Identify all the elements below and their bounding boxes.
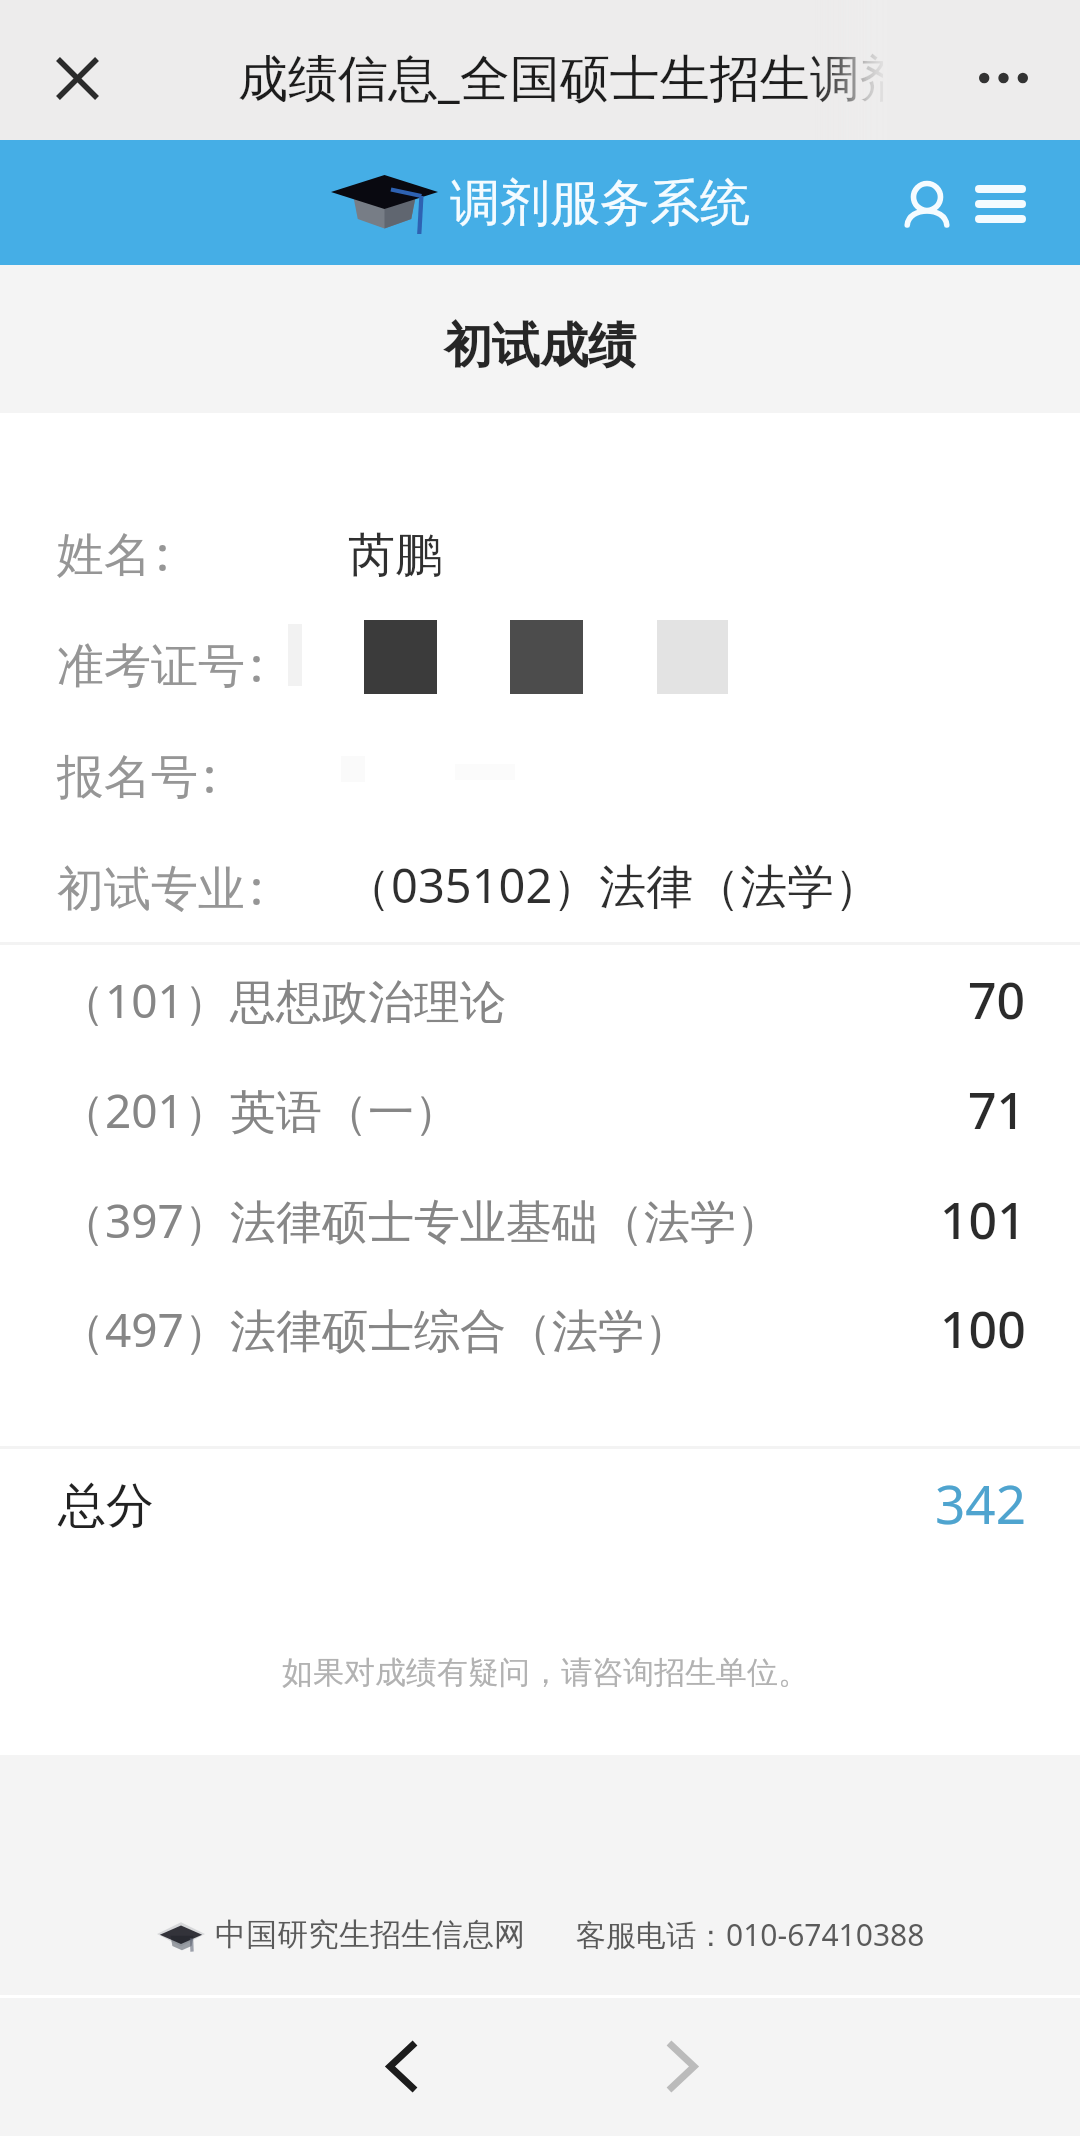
button[interactable]: Back: [348, 2012, 456, 2120]
button[interactable]: Close: [37, 38, 117, 118]
staticText: 中国研究生招生信息网: [215, 1915, 525, 1954]
staticText: （497）法律硕士综合（法学）: [59, 1298, 690, 1361]
staticText: 100: [940, 1295, 1026, 1363]
staticText: 初试专业: [57, 860, 245, 919]
staticText: 初试成绩: [444, 316, 636, 376]
staticText: 报名号: [57, 748, 198, 807]
staticText: 101: [940, 1186, 1026, 1254]
button[interactable]: Menu: [954, 158, 1046, 250]
staticText: 总分: [58, 1476, 154, 1536]
staticText: 70: [968, 966, 1026, 1034]
button[interactable]: 总分: [58, 1450, 1026, 1562]
button[interactable]: （101）思想政治理论: [59, 946, 1026, 1054]
staticText: （201）英语（一）: [59, 1079, 460, 1142]
button[interactable]: More options: [948, 38, 1058, 118]
staticText: 调剂服务系统: [450, 172, 750, 235]
button[interactable]: Forward: [627, 2012, 735, 2120]
staticText: 71: [968, 1076, 1026, 1144]
button[interactable]: （397）法律硕士专业基础（法学）: [59, 1166, 1026, 1274]
staticText: 准考证号: [57, 637, 245, 696]
button[interactable]: （497）法律硕士综合（法学）: [59, 1275, 1026, 1383]
button[interactable]: Account: [884, 168, 972, 256]
staticText: （035102）法律（法学）: [344, 853, 882, 917]
staticText: 如果对成绩有疑问，请咨询招生单位。: [282, 1653, 809, 1692]
staticText: 成绩信息_全国硕士生招生调剂: [238, 43, 883, 111]
staticText: 芮鹏: [348, 526, 442, 585]
staticText: 342: [935, 1467, 1026, 1539]
staticText: （101）思想政治理论: [59, 969, 506, 1032]
staticText: （397）法律硕士专业基础（法学）: [59, 1189, 782, 1252]
staticText: 客服电话：010-67410388: [576, 1914, 925, 1955]
button[interactable]: （201）英语（一）: [59, 1056, 1026, 1164]
staticText: 姓名: [57, 526, 151, 585]
